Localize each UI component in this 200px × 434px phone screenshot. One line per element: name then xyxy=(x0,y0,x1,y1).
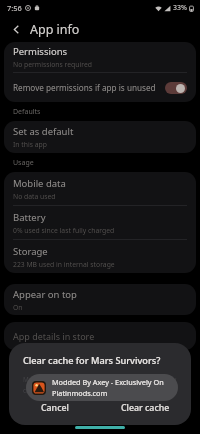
staticText: 33% xyxy=(173,3,187,13)
button[interactable]: Mobile data xyxy=(4,172,196,205)
staticText: Usage xyxy=(13,158,34,168)
staticText: No data used xyxy=(13,192,56,201)
staticText: No permissions required xyxy=(13,60,92,69)
button[interactable]: Storage xyxy=(4,240,196,273)
staticText: clearing cache if the app misbehaves. xyxy=(23,386,136,395)
staticText: Modded By Axey - Exclusively On xyxy=(52,377,164,387)
button[interactable]: Clear cache xyxy=(100,397,191,419)
staticText: 7:56 xyxy=(7,3,22,13)
staticText: App details in store xyxy=(13,330,95,342)
staticText: Clear cache xyxy=(121,402,170,414)
button[interactable]: Cancel xyxy=(9,397,100,419)
staticText: Permissions xyxy=(13,45,68,58)
button[interactable]: Permissions xyxy=(4,42,196,72)
staticText: Appear on top xyxy=(13,288,77,301)
staticText: Mobile data xyxy=(13,177,66,190)
staticText: Remove permissions if app is unused xyxy=(13,82,156,93)
staticText: 0% used since last fully charged xyxy=(13,226,115,235)
staticText: Battery xyxy=(13,211,46,224)
staticText: Storage xyxy=(13,245,48,258)
button[interactable]: App details in store xyxy=(4,322,196,350)
staticText: Clear cache for Mars Survivors? xyxy=(23,354,161,367)
button[interactable]: Set as default xyxy=(4,121,196,153)
button[interactable]: Remove permissions if app is unused xyxy=(4,73,196,102)
staticText: 223 MB used in internal storage xyxy=(13,260,115,269)
button[interactable]: Battery xyxy=(4,206,196,239)
staticText: Mars Survivors cached items won't be per… xyxy=(23,375,181,384)
staticText: Cancel xyxy=(41,402,69,414)
staticText: Set as default xyxy=(13,125,74,138)
staticText: In this app xyxy=(13,140,47,149)
button[interactable]: Remove permissions if app is unused togg… xyxy=(165,82,187,94)
staticText: On xyxy=(13,303,23,312)
staticText: Platinmods.com xyxy=(52,388,108,398)
button[interactable]: Back xyxy=(7,20,25,38)
staticText: App info xyxy=(30,21,80,38)
staticText: Defaults xyxy=(13,107,41,117)
button[interactable]: Appear on top xyxy=(4,284,196,315)
